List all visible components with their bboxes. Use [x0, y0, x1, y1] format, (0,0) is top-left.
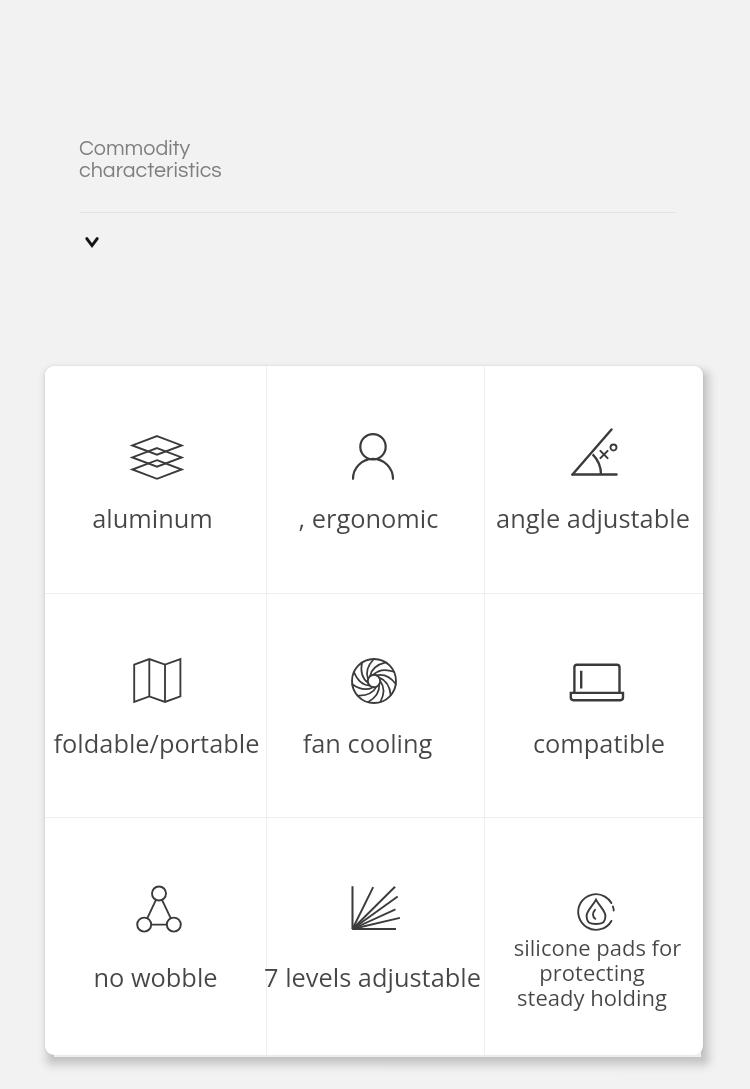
staticText: Commodity characteristics	[79, 137, 222, 182]
button[interactable]: Expand section	[72, 222, 112, 262]
button[interactable]: compatible	[485, 594, 703, 817]
staticText: no wobble	[45, 960, 266, 995]
staticText: compatible	[490, 726, 703, 761]
button[interactable]: silicone pads for protecting steady hold…	[485, 818, 703, 1055]
staticText: 7 levels adjustable	[264, 960, 481, 995]
button[interactable]: fan cooling	[267, 594, 484, 817]
button[interactable]: 7 levels adjustable	[267, 818, 484, 1055]
staticText: aluminum	[45, 501, 263, 536]
button[interactable]: angle adjustable	[485, 366, 703, 593]
button[interactable]: foldable/portable	[45, 594, 266, 817]
button[interactable]: aluminum	[45, 366, 266, 593]
button[interactable]: no wobble	[45, 818, 266, 1055]
staticText: , ergonomic	[260, 501, 477, 536]
staticText: silicone pads for protecting steady hold…	[483, 932, 701, 1012]
button[interactable]: , ergonomic	[267, 366, 484, 593]
staticText: angle adjustable	[484, 501, 702, 536]
staticText: foldable/portable	[46, 726, 267, 761]
staticText: fan cooling	[259, 726, 476, 761]
